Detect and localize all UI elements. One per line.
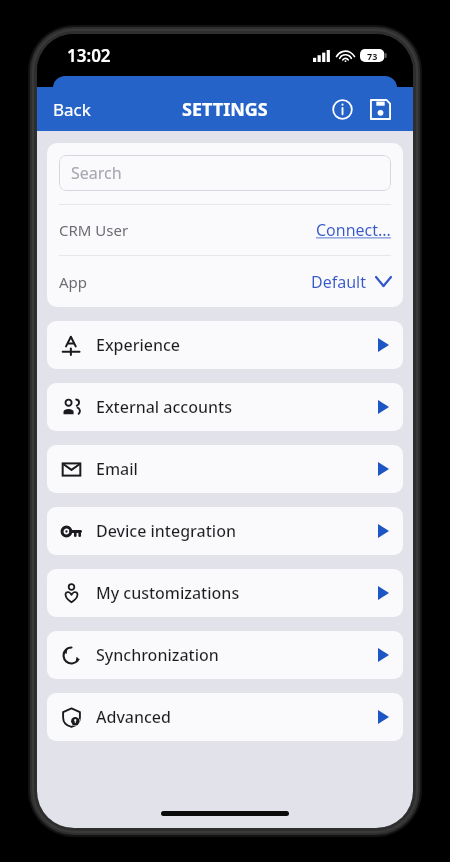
button[interactable]: Information — [323, 90, 361, 128]
staticText: Email — [96, 458, 138, 480]
button[interactable]: Experience — [47, 321, 403, 369]
staticText: Connect... — [316, 219, 391, 241]
staticText: Device integration — [96, 520, 236, 542]
staticText: CRM User — [59, 220, 129, 240]
button[interactable]: Advanced — [47, 693, 403, 741]
button[interactable]: Back — [37, 90, 107, 129]
staticText: Advanced — [96, 706, 171, 728]
button[interactable]: My customizations — [47, 569, 403, 617]
staticText: 13:02 — [67, 44, 111, 67]
button[interactable]: CRM User — [59, 205, 391, 255]
staticText: App — [59, 272, 88, 292]
button[interactable]: Email — [47, 445, 403, 493]
button[interactable]: App — [59, 256, 391, 307]
button[interactable]: Search — [59, 155, 391, 191]
staticText: My customizations — [96, 582, 240, 604]
staticText: Search — [71, 162, 122, 184]
button[interactable]: Save — [361, 90, 399, 128]
staticText: 73 — [367, 50, 378, 62]
staticText: Experience — [96, 334, 181, 356]
staticText: Synchronization — [96, 644, 219, 666]
staticText: Default — [311, 271, 366, 293]
button[interactable]: Device integration — [47, 507, 403, 555]
button[interactable]: External accounts — [47, 383, 403, 431]
button[interactable]: Synchronization — [47, 631, 403, 679]
staticText: External accounts — [96, 396, 232, 418]
staticText: SETTINGS — [182, 97, 268, 122]
staticText: Back — [53, 98, 91, 121]
